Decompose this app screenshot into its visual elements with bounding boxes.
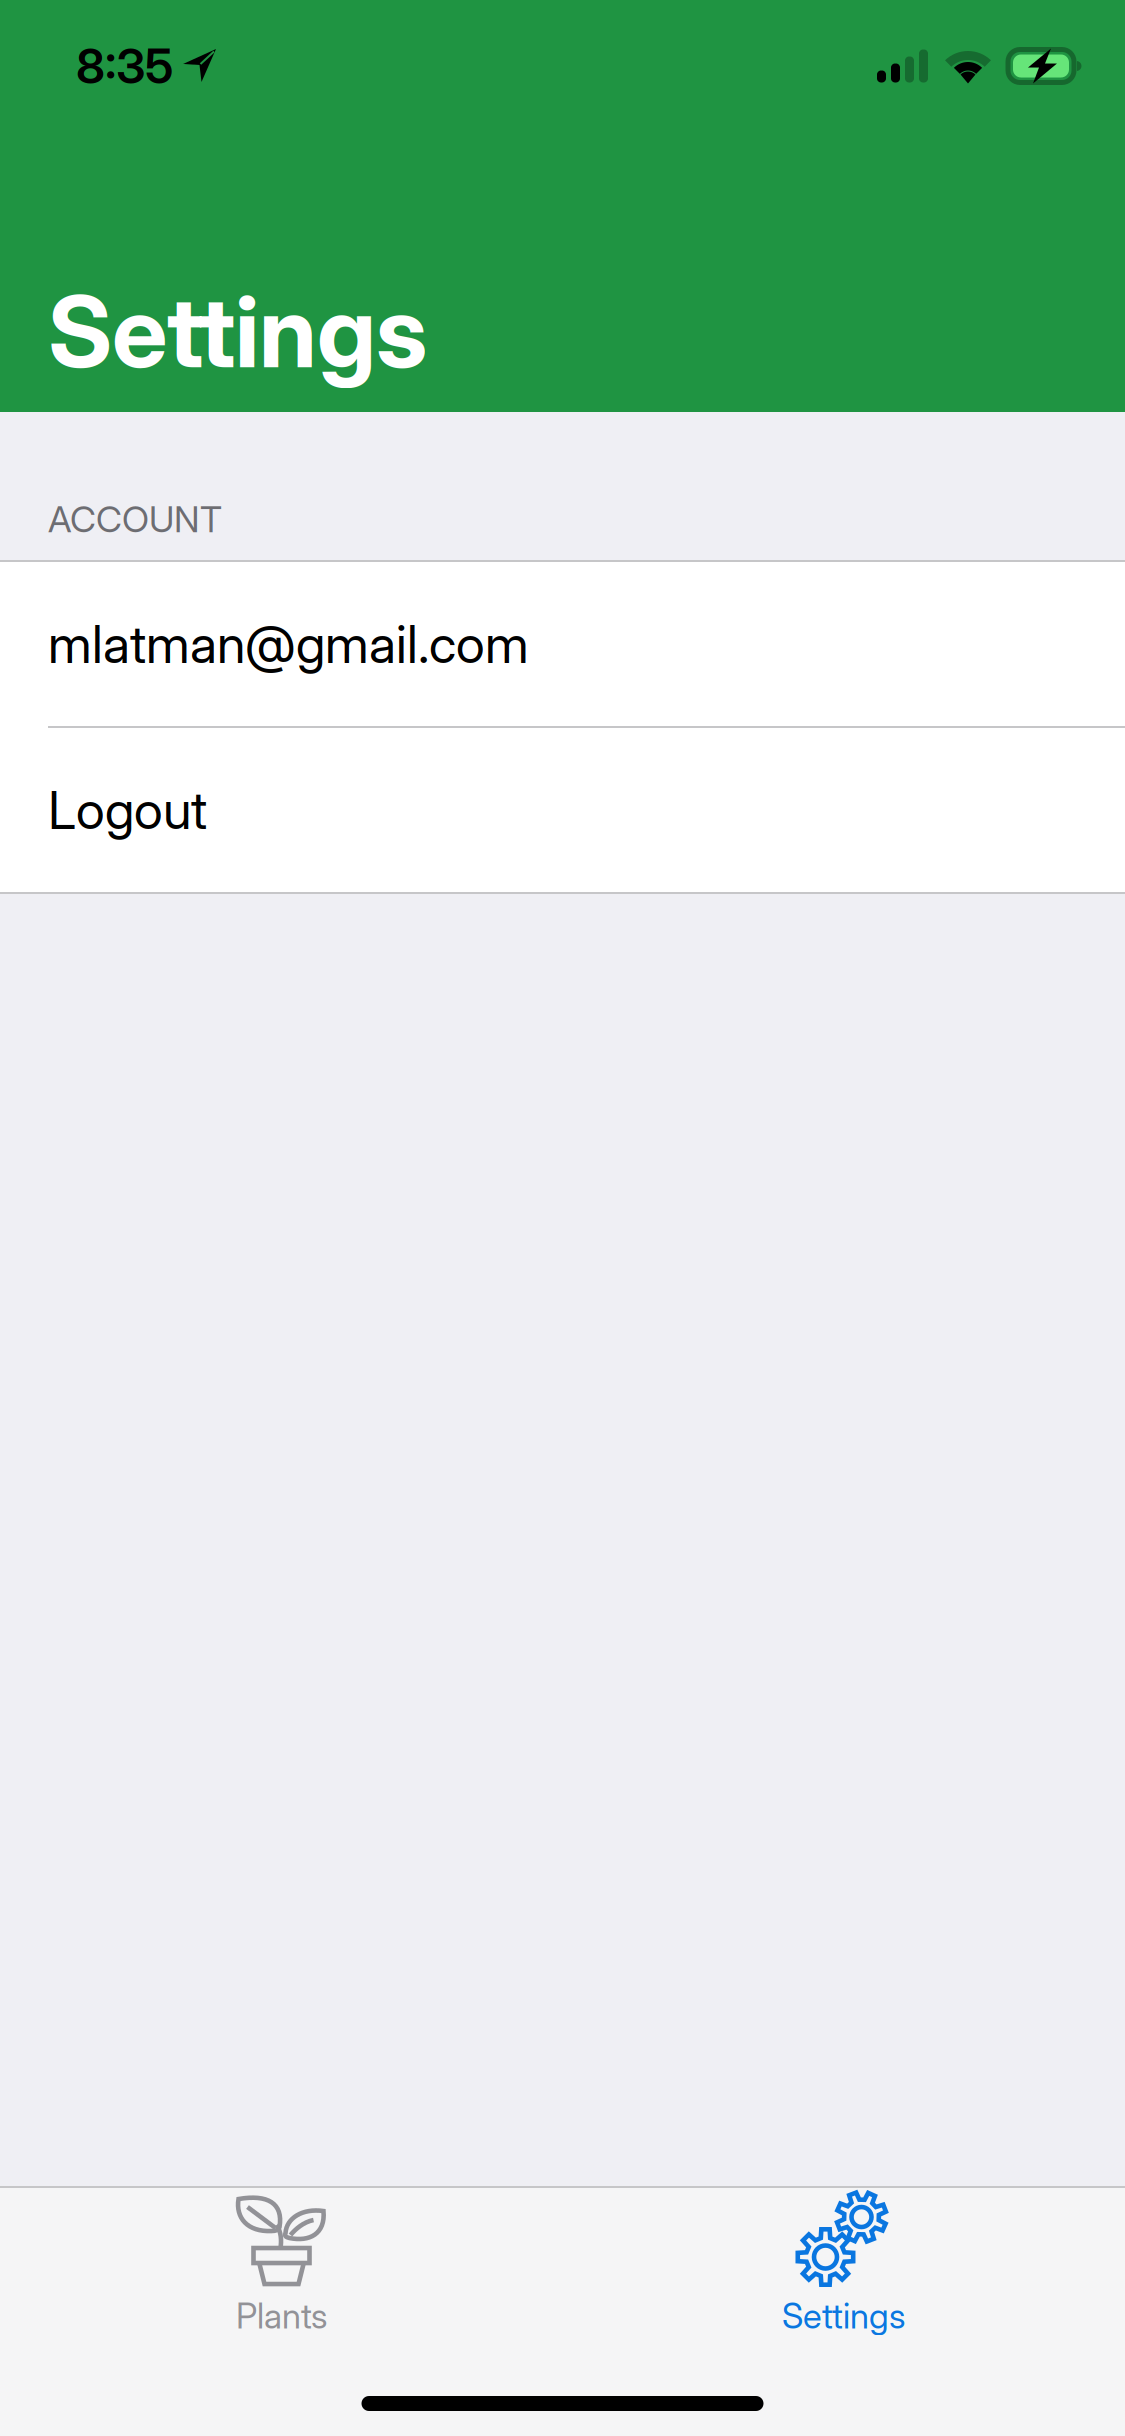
staticText: 8:35 [76,37,173,95]
button[interactable]: Settings [562,2188,1124,2335]
staticText: Settings [782,2295,905,2337]
button[interactable]: Plants [0,2188,562,2335]
staticText: Plants [236,2295,327,2337]
staticText: Logout [48,778,207,841]
button[interactable]: Logout [0,728,1125,892]
staticText: ACCOUNT [48,497,222,541]
button[interactable]: mlatman@gmail.com [0,562,1125,726]
staticText: mlatman@gmail.com [48,612,529,675]
staticText: Settings [48,272,427,391]
